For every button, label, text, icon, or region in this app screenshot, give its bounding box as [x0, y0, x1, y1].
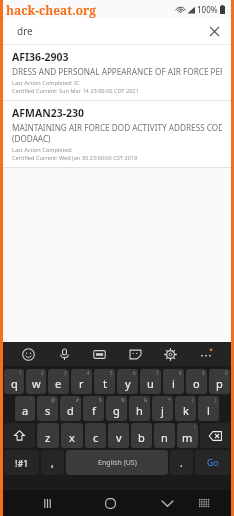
- button[interactable]: &: [129, 396, 150, 421]
- button[interactable]: 8: [163, 369, 184, 394]
- staticText: u: [147, 376, 154, 391]
- button[interactable]: 4: [71, 369, 92, 394]
- button[interactable]: !: [177, 423, 198, 448]
- staticText: 8: [179, 370, 182, 376]
- staticText: a: [22, 403, 29, 418]
- staticText: g: [113, 403, 120, 418]
- staticText: m: [182, 430, 193, 445]
- staticText: %: [121, 397, 125, 403]
- button[interactable]: z: [37, 423, 59, 448]
- staticText: AFMAN23-230: [12, 106, 85, 120]
- staticText: 7: [156, 370, 159, 376]
- staticText: y: [125, 376, 131, 391]
- staticText: v: [116, 430, 122, 445]
- staticText: !#1: [15, 457, 29, 469]
- button[interactable]: Emoji: [18, 344, 38, 364]
- button[interactable]: Backspace: [200, 423, 230, 448]
- button[interactable]: More options: [196, 344, 216, 364]
- staticText: ,: [51, 456, 54, 470]
- staticText: d: [67, 403, 74, 418]
- button[interactable]: ,: [41, 450, 64, 475]
- staticText: b: [138, 430, 145, 445]
- staticText: English (US): [98, 458, 137, 468]
- button[interactable]: .: [170, 450, 193, 475]
- staticText: s: [45, 403, 51, 418]
- button[interactable]: Stickers: [125, 344, 145, 364]
- button[interactable]: 5: [94, 369, 115, 394]
- button[interactable]: ': [15, 396, 35, 421]
- button[interactable]: Voice input: [54, 344, 74, 364]
- button[interactable]: n: [154, 423, 175, 448]
- button[interactable]: 1: [4, 369, 24, 394]
- button[interactable]: Shift: [4, 423, 35, 448]
- button[interactable]: $: [83, 396, 104, 421]
- button[interactable]: Keyboard settings: [160, 344, 180, 364]
- staticText: 3: [64, 370, 67, 376]
- staticText: z: [45, 430, 51, 445]
- staticText: 1: [19, 370, 22, 376]
- button[interactable]: AFMAN23-230: [3, 101, 231, 167]
- staticText: f: [92, 403, 96, 418]
- staticText: c: [93, 430, 99, 445]
- staticText: Certified Current: Wed Jan 30 23:00:00 C…: [12, 154, 138, 162]
- staticText: @: [51, 397, 56, 403]
- staticText: p: [216, 376, 223, 391]
- staticText: j: [161, 403, 164, 418]
- button[interactable]: GIF: [89, 344, 109, 364]
- button[interactable]: c: [85, 423, 106, 448]
- staticText: Go: [207, 457, 219, 469]
- staticText: MAINTAINING AIR FORCE DOD ACTIVITY ADDRE…: [12, 122, 222, 133]
- button[interactable]: #: [60, 396, 81, 421]
- staticText: DRESS AND PERSONAL APPEARANCE OF AIR FOR…: [12, 66, 222, 77]
- button[interactable]: 9: [186, 369, 207, 394]
- button[interactable]: Change keyboard: [192, 491, 216, 515]
- button[interactable]: AFI36-2903: [3, 45, 231, 100]
- button[interactable]: *: [152, 396, 173, 421]
- button[interactable]: 6: [117, 369, 138, 394]
- button[interactable]: ): [198, 396, 219, 421]
- staticText: (DODAAC): [12, 133, 51, 144]
- staticText: q: [11, 376, 18, 391]
- button[interactable]: Clear search: [205, 22, 223, 40]
- button[interactable]: 0: [209, 369, 230, 394]
- button[interactable]: 2: [26, 369, 46, 394]
- button[interactable]: Recents: [35, 491, 59, 515]
- button[interactable]: x: [61, 423, 83, 448]
- button[interactable]: 7: [140, 369, 161, 394]
- staticText: 9: [202, 370, 205, 376]
- staticText: w: [32, 376, 41, 391]
- staticText: 4: [87, 370, 90, 376]
- staticText: dre: [17, 24, 33, 38]
- button[interactable]: v: [108, 423, 129, 448]
- staticText: o: [193, 376, 200, 391]
- staticText: e: [55, 376, 62, 391]
- staticText: (: [192, 397, 194, 403]
- button[interactable]: Home: [98, 491, 122, 515]
- staticText: 5: [110, 370, 113, 376]
- staticText: .: [180, 456, 183, 470]
- button[interactable]: 3: [48, 369, 69, 394]
- staticText: !: [194, 424, 196, 430]
- staticText: Certified Current: Sun Mar 14 23:00:00 C…: [12, 87, 139, 95]
- staticText: #: [76, 397, 79, 403]
- button[interactable]: (: [175, 396, 196, 421]
- staticText: 100%: [197, 4, 218, 15]
- button[interactable]: Go: [195, 450, 230, 475]
- button[interactable]: dre: [3, 18, 231, 44]
- staticText: hack-cheat.org: [6, 2, 97, 18]
- staticText: 0: [225, 370, 228, 376]
- staticText: n: [161, 430, 168, 445]
- button[interactable]: %: [106, 396, 127, 421]
- staticText: x: [69, 430, 75, 445]
- button[interactable]: English (US): [66, 450, 168, 475]
- button[interactable]: !#1: [4, 450, 39, 475]
- staticText: k: [183, 403, 189, 418]
- staticText: l: [207, 403, 210, 418]
- staticText: Last Action Completed:: [12, 146, 73, 154]
- button[interactable]: @: [37, 396, 58, 421]
- staticText: &: [144, 397, 148, 403]
- staticText: AFI36-2903: [12, 50, 69, 64]
- button[interactable]: b: [131, 423, 152, 448]
- staticText: *: [168, 397, 171, 403]
- button[interactable]: Hide keyboard: [155, 491, 179, 515]
